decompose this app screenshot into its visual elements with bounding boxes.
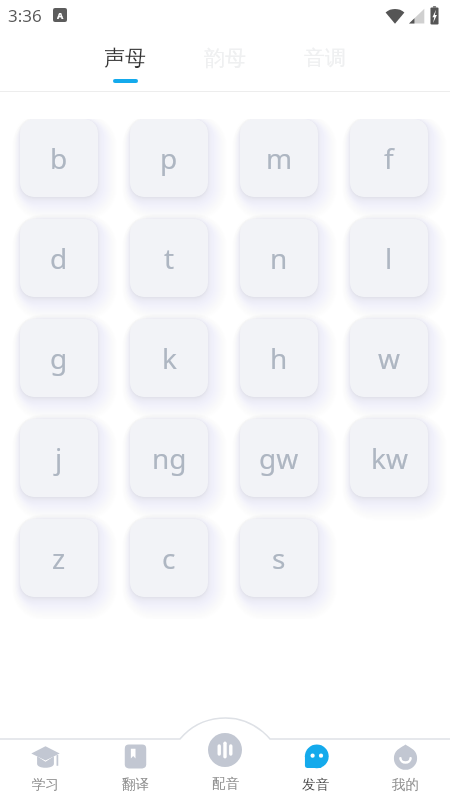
staticText: s	[272, 539, 286, 577]
button[interactable]: n	[240, 219, 318, 297]
button[interactable]: c	[130, 519, 208, 597]
staticText: g	[50, 339, 68, 377]
button[interactable]: g	[20, 319, 98, 397]
staticText: d	[50, 239, 68, 277]
staticText: 翻译	[122, 776, 149, 793]
button[interactable]: t	[130, 219, 208, 297]
button[interactable]: k	[130, 319, 208, 397]
staticText: m	[266, 139, 293, 177]
button[interactable]: kw	[350, 419, 428, 497]
button[interactable]: 配音	[180, 718, 270, 800]
button[interactable]: s	[240, 519, 318, 597]
staticText: 学习	[32, 776, 59, 793]
staticText: 配音	[212, 775, 239, 792]
staticText: n	[270, 239, 288, 277]
staticText: z	[52, 539, 66, 577]
button[interactable]: 声母	[75, 30, 175, 83]
staticText: gw	[259, 439, 299, 477]
staticText: p	[160, 139, 178, 177]
button[interactable]: 韵母	[175, 30, 275, 79]
staticText: f	[384, 139, 394, 177]
staticText: j	[55, 439, 63, 477]
staticText: h	[270, 339, 288, 377]
staticText: l	[385, 239, 393, 277]
button[interactable]: w	[350, 319, 428, 397]
staticText: 3:36	[8, 4, 42, 27]
button[interactable]: 音调	[275, 30, 375, 79]
staticText: b	[50, 139, 68, 177]
staticText: ng	[152, 439, 187, 477]
button[interactable]: b	[20, 119, 98, 197]
staticText: 音调	[304, 45, 346, 71]
button[interactable]: j	[20, 419, 98, 497]
staticText: A	[57, 9, 64, 21]
button[interactable]: z	[20, 519, 98, 597]
staticText: w	[378, 339, 401, 377]
button[interactable]: f	[350, 119, 428, 197]
staticText: 韵母	[204, 45, 246, 71]
staticText: kw	[371, 439, 408, 477]
button[interactable]: p	[130, 119, 208, 197]
button[interactable]: 学习	[0, 718, 90, 800]
button[interactable]: h	[240, 319, 318, 397]
staticText: c	[162, 539, 176, 577]
button[interactable]: 发音	[270, 718, 360, 800]
button[interactable]: ng	[130, 419, 208, 497]
staticText: 声母	[104, 45, 146, 71]
button[interactable]: l	[350, 219, 428, 297]
button[interactable]: d	[20, 219, 98, 297]
button[interactable]: 翻译	[90, 718, 180, 800]
button[interactable]: gw	[240, 419, 318, 497]
staticText: k	[162, 339, 177, 377]
staticText: 我的	[392, 776, 419, 793]
button[interactable]: 我的	[360, 718, 450, 800]
button[interactable]: m	[240, 119, 318, 197]
staticText: 发音	[302, 776, 329, 793]
staticText: t	[164, 239, 175, 277]
